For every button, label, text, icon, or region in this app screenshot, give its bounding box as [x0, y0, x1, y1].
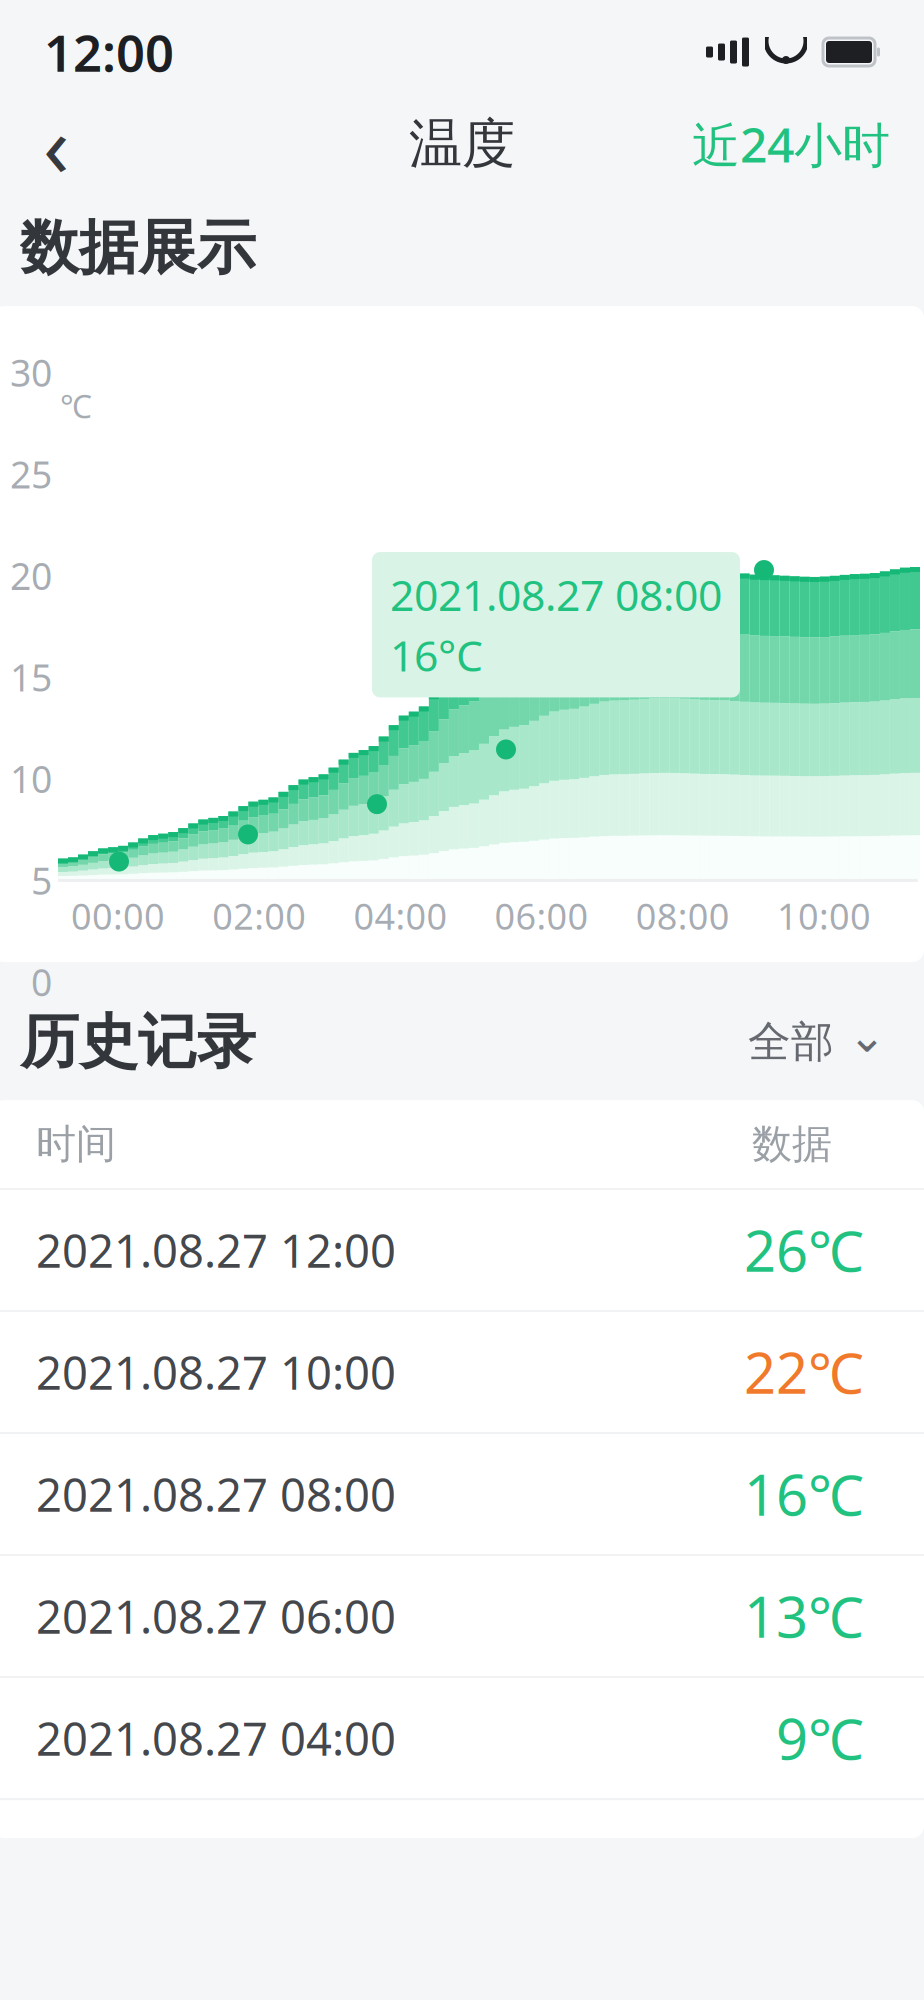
- staticText: 10:00: [777, 892, 871, 940]
- staticText: 2021.08.27 10:00: [36, 1342, 396, 1402]
- button[interactable]: 2021.08.27 06:00: [0, 1556, 924, 1676]
- staticText: 15: [10, 652, 52, 702]
- staticText: 04:00: [353, 892, 447, 940]
- staticText: 2021.08.27 06:00: [36, 1586, 396, 1646]
- staticText: 9℃: [776, 1701, 864, 1775]
- staticText: 时间: [36, 1120, 116, 1169]
- staticText: ℃: [60, 384, 92, 427]
- button[interactable]: 2021.08.27 12:00: [0, 1190, 924, 1310]
- staticText: 0: [31, 957, 52, 1007]
- staticText: 20: [10, 551, 52, 600]
- staticText: 2021.08.27 12:00: [36, 1220, 396, 1280]
- button[interactable]: 2021.08.27 04:00: [0, 1678, 924, 1798]
- staticText: 10: [10, 754, 52, 803]
- staticText: 26℃: [744, 1213, 864, 1287]
- button[interactable]: 返回: [14, 102, 98, 186]
- staticText: 06:00: [495, 892, 589, 940]
- staticText: 02:00: [212, 892, 306, 940]
- staticText: 2021.08.27 08:00: [36, 1464, 396, 1524]
- staticText: 25: [10, 449, 52, 499]
- staticText: 13℃: [744, 1579, 864, 1653]
- staticText: 22℃: [744, 1335, 864, 1409]
- staticText: 2021.08.27 08:00: [390, 566, 722, 623]
- button[interactable]: 近24小时: [682, 102, 900, 186]
- button[interactable]: 2021.08.27 08:00: [0, 1434, 924, 1554]
- staticText: 16°C: [390, 627, 483, 683]
- staticText: 08:00: [636, 892, 730, 940]
- button[interactable]: 全部: [742, 1012, 892, 1072]
- staticText: 近24小时: [692, 112, 890, 176]
- staticText: 全部: [748, 1016, 834, 1068]
- staticText: 历史记录: [20, 1006, 256, 1078]
- button[interactable]: 2021.08.27 10:00: [0, 1312, 924, 1432]
- staticText: ‹: [43, 87, 69, 201]
- staticText: 00:00: [71, 892, 165, 940]
- staticText: 12:00: [44, 18, 174, 86]
- staticText: 2021.08.27 04:00: [36, 1708, 396, 1768]
- staticText: 30: [10, 347, 52, 397]
- staticText: 5: [31, 855, 52, 905]
- staticText: 16℃: [744, 1457, 864, 1531]
- staticText: 温度: [409, 111, 515, 177]
- staticText: ⌄: [848, 1010, 886, 1062]
- staticText: 数据展示: [20, 212, 256, 284]
- staticText: 数据: [752, 1120, 832, 1169]
